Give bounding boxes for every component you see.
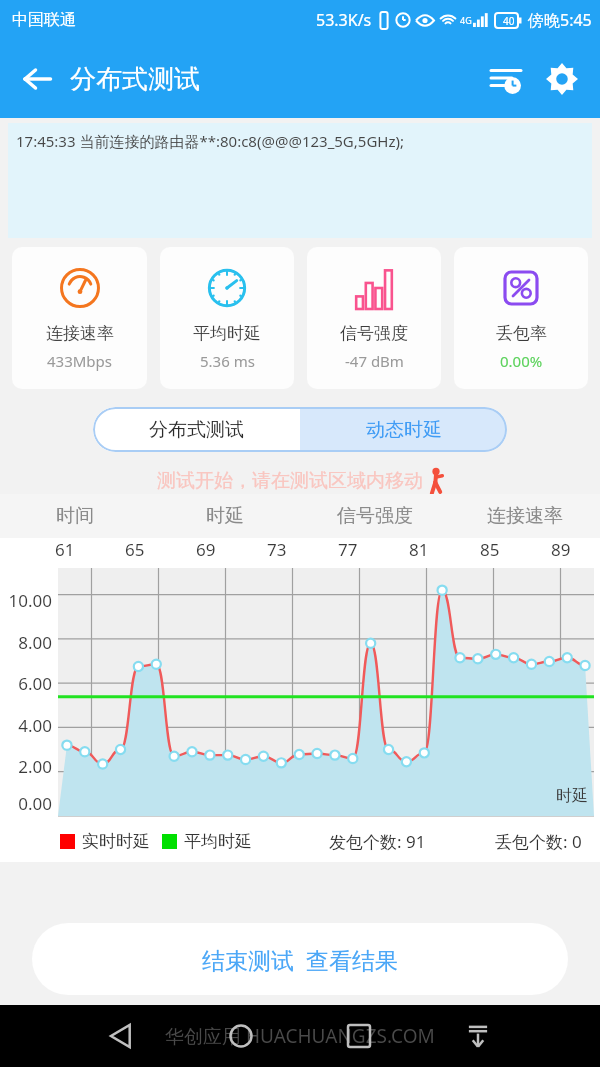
button[interactable]: 丢包率	[454, 247, 588, 389]
staticText: 77	[338, 538, 358, 561]
staticText: 65	[125, 538, 145, 561]
staticText: 连接速率	[46, 323, 114, 344]
staticText: 连接速率	[450, 504, 600, 528]
staticText: 10.00	[0, 589, 52, 612]
staticText: 6.00	[0, 672, 52, 695]
button[interactable]: 结束测试 查看结果	[32, 923, 568, 995]
staticText: 平均时延	[193, 323, 261, 344]
staticText: 2.00	[0, 755, 52, 778]
staticText: 5.36 ms	[200, 351, 255, 371]
button[interactable]: 信号强度	[307, 247, 441, 389]
staticText: -47 dBm	[345, 351, 404, 371]
staticText: 动态时延	[366, 418, 442, 442]
staticText: 89	[551, 538, 571, 561]
staticText: 信号强度	[340, 323, 408, 344]
staticText: 时延	[150, 504, 300, 528]
button[interactable]: Back	[10, 52, 64, 106]
staticText: 53.3K/s	[316, 9, 372, 31]
staticText: 8.00	[0, 631, 52, 654]
button[interactable]: Home	[219, 1014, 263, 1058]
staticText: 73	[267, 538, 287, 561]
button[interactable]: Recents	[337, 1014, 381, 1058]
button[interactable]: Settings	[534, 51, 590, 107]
staticText: 61	[55, 538, 75, 561]
staticText: 40	[503, 14, 515, 28]
staticText: 时延	[556, 786, 588, 806]
button[interactable]: 分布式测试	[93, 407, 300, 452]
button[interactable]: Hide navigation bar	[456, 1014, 500, 1058]
staticText: 0.00%	[500, 351, 543, 371]
staticText: 4.00	[0, 714, 52, 737]
staticText: 信号强度	[300, 504, 450, 528]
button[interactable]: 连接速率	[12, 247, 147, 389]
staticText: 85	[480, 538, 500, 561]
staticText: 69	[196, 538, 216, 561]
staticText: 分布式测试	[70, 63, 200, 96]
staticText: 傍晚5:45	[528, 9, 592, 31]
staticText: 华创应用 HUACHUANGZS.COM	[165, 1023, 435, 1049]
button[interactable]: 动态时延	[300, 407, 507, 452]
button[interactable]: Back	[100, 1014, 144, 1058]
button[interactable]: 平均时延	[160, 247, 294, 389]
button[interactable]: History	[478, 51, 534, 107]
staticText: 丢包率	[496, 323, 547, 344]
staticText: 17:45:33 当前连接的路由器**:80:c8(@@@123_5G,5GHz…	[16, 131, 404, 151]
staticText: 4G	[460, 14, 472, 26]
staticText: 实时时延	[82, 831, 150, 852]
staticText: 结束测试 查看结果	[202, 944, 398, 975]
staticText: 发包个数: 91	[329, 830, 426, 853]
staticText: 平均时延	[184, 831, 252, 852]
staticText: 81	[409, 538, 429, 561]
staticText: 测试开始，请在测试区域内移动	[157, 469, 423, 493]
staticText: 中国联通	[12, 10, 76, 30]
staticText: 433Mbps	[47, 351, 112, 371]
staticText: 0.00	[0, 792, 52, 815]
staticText: 丢包个数: 0	[495, 830, 582, 853]
staticText: 分布式测试	[149, 418, 244, 442]
staticText: 时间	[0, 504, 150, 528]
